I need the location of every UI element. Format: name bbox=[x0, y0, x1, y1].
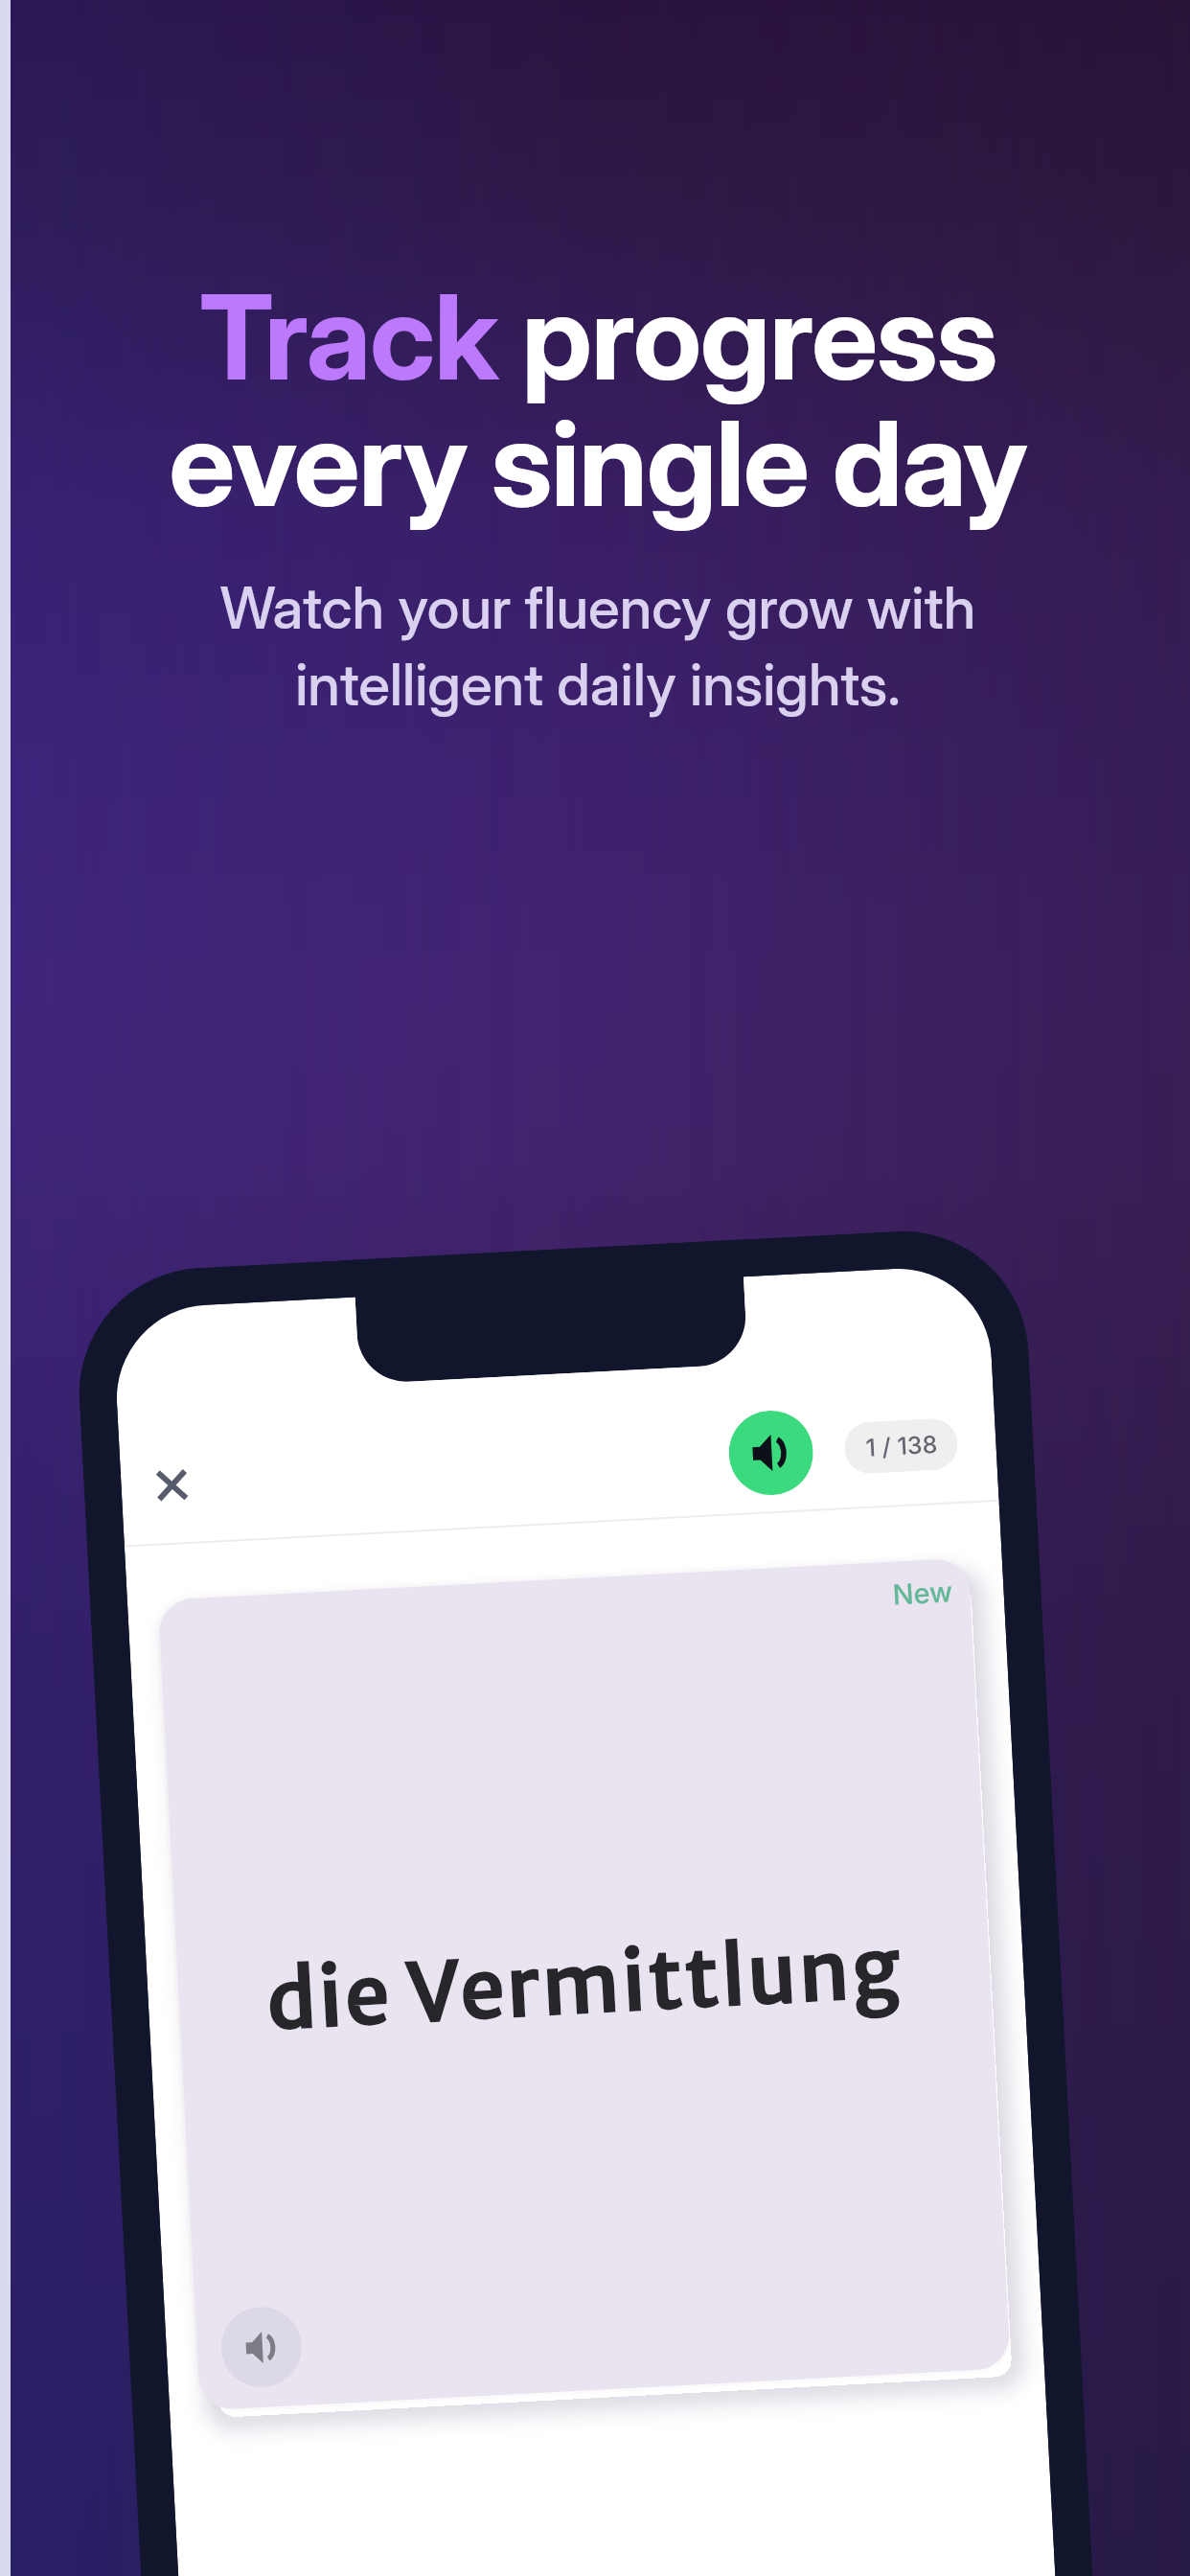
staticText: Track progress every single day bbox=[3, 265, 1190, 534]
button[interactable]: 1 / 138 bbox=[843, 1417, 959, 1475]
staticText: die Vermittlung bbox=[265, 1917, 905, 2050]
staticText: Watch your fluency grow with intelligent… bbox=[3, 573, 1190, 720]
staticText: 1 / 138 bbox=[865, 1430, 938, 1462]
button[interactable]: New bbox=[158, 1558, 1011, 2411]
button[interactable]: Play word audio bbox=[219, 2305, 304, 2389]
button[interactable]: Play audio bbox=[727, 1409, 815, 1497]
staticText: New bbox=[892, 1575, 954, 1611]
button[interactable]: Close bbox=[133, 1446, 210, 1524]
